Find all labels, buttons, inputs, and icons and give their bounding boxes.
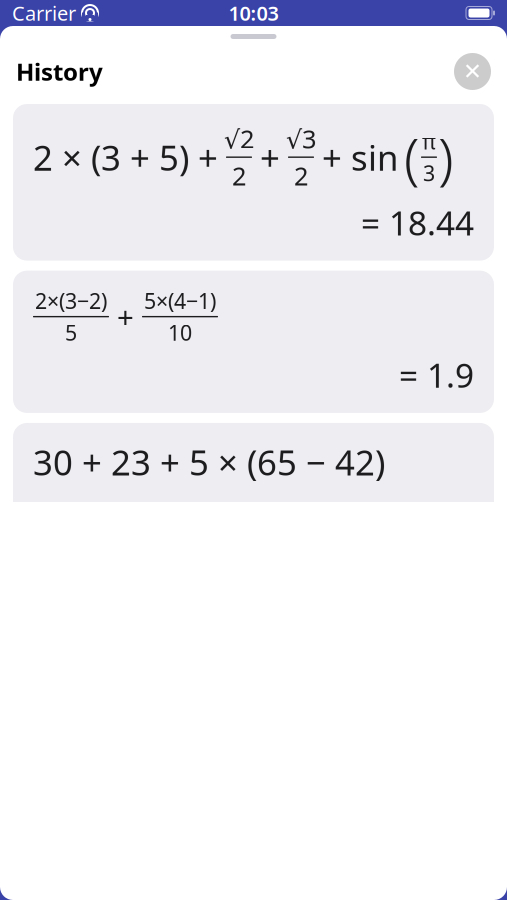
staticText: √2 bbox=[224, 122, 254, 155]
staticText: History bbox=[16, 56, 103, 87]
staticText: π bbox=[422, 127, 436, 155]
staticText: + bbox=[117, 297, 134, 336]
button[interactable]: Close bbox=[454, 53, 491, 90]
staticText: 2 bbox=[232, 159, 246, 192]
button[interactable]: 2 × (3 + 5) + bbox=[13, 104, 494, 261]
staticText: ( bbox=[404, 120, 420, 194]
staticText: 3 bbox=[423, 159, 435, 187]
staticText: Carrier bbox=[12, 0, 76, 26]
button[interactable]: 2×(3−2) bbox=[13, 271, 494, 413]
staticText: 30 + 23 + 5 × (65 − 42) bbox=[33, 439, 385, 485]
staticText: = 1.9 bbox=[399, 353, 474, 397]
staticText: + bbox=[260, 134, 280, 180]
staticText: ) bbox=[438, 120, 454, 194]
button[interactable]: 30 + 23 + 5 × (65 − 42) bbox=[13, 423, 494, 551]
staticText: 5 bbox=[65, 318, 77, 347]
staticText: 2×(3−2) bbox=[35, 287, 107, 315]
staticText: 2 × (3 + 5) + bbox=[33, 134, 218, 180]
staticText: ✕ bbox=[463, 59, 482, 84]
staticText: + sin bbox=[322, 134, 398, 180]
staticText: √3 bbox=[286, 122, 316, 155]
staticText: 5×(4−1) bbox=[144, 287, 216, 315]
staticText: 2 bbox=[294, 159, 308, 192]
staticText: 10:03 bbox=[228, 0, 278, 26]
staticText: = 168 bbox=[389, 491, 474, 535]
staticText: = 18.44 bbox=[361, 200, 474, 245]
staticText: 10 bbox=[168, 318, 192, 347]
